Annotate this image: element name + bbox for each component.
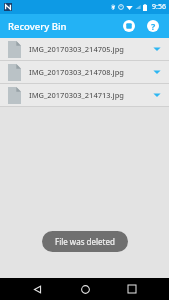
staticText: IMG_20170303_214705.jpg [29, 44, 124, 54]
staticText: Recovery Bin [8, 20, 67, 33]
button[interactable]: Overview [121, 278, 143, 300]
button[interactable]: Back [26, 278, 48, 300]
button[interactable]: IMG_20170303_214713.jpg [0, 84, 169, 106]
button[interactable]: Help [142, 15, 164, 37]
staticText: 9:56 [152, 2, 166, 12]
staticText: ? [151, 20, 156, 32]
button[interactable]: IMG_20170303_214705.jpg [0, 38, 169, 60]
staticText: File was deleted [55, 236, 115, 247]
button[interactable]: Expand options [145, 61, 169, 83]
button[interactable]: IMG_20170303_214708.jpg [0, 61, 169, 83]
staticText: IMG_20170303_214708.jpg [29, 67, 124, 77]
button[interactable]: Expand options [145, 38, 169, 60]
staticText: IMG_20170303_214713.jpg [29, 90, 124, 100]
button[interactable]: Expand options [145, 84, 169, 106]
button[interactable]: Select all [118, 15, 140, 37]
button[interactable]: Home [74, 278, 96, 300]
